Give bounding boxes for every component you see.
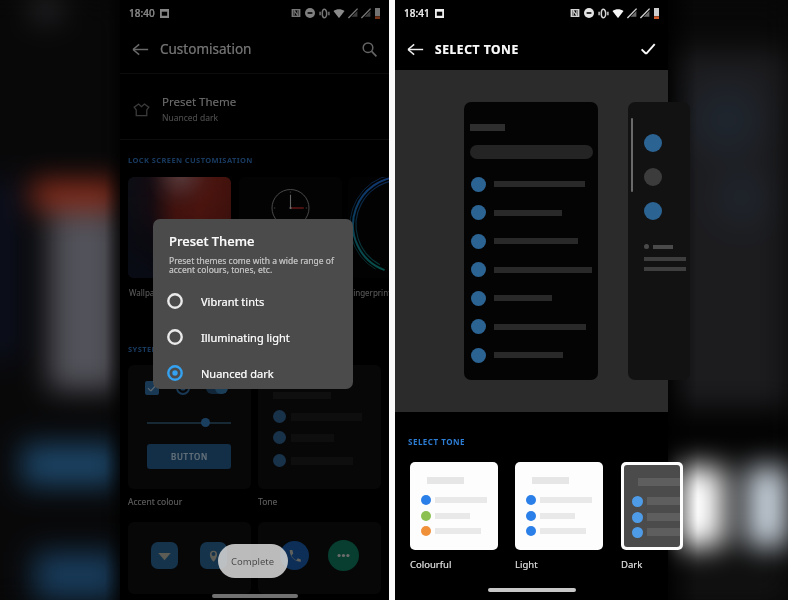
staticText: Light	[515, 558, 538, 571]
staticText: 18:40	[129, 6, 155, 20]
button[interactable]: Back	[395, 28, 435, 70]
button[interactable]: Vibrant tints	[153, 285, 353, 317]
button[interactable]	[128, 522, 251, 594]
staticText: Tone	[258, 496, 278, 508]
button[interactable]: Preset Theme	[120, 85, 389, 133]
staticText: LOCK SCREEN CUSTOMISATION	[128, 155, 253, 165]
button[interactable]: Dark	[621, 462, 683, 571]
button[interactable]: Complete	[218, 544, 288, 578]
button[interactable]: BUTTON	[147, 444, 231, 469]
staticText: Preset Theme	[162, 94, 237, 110]
button[interactable]: BUTTON	[128, 365, 251, 508]
staticText: Accent colour	[128, 496, 183, 508]
button[interactable]: Wallpaper	[128, 177, 231, 298]
button[interactable]	[464, 102, 598, 380]
staticText: BUTTON	[171, 451, 208, 462]
staticText: Colourful	[410, 558, 452, 571]
button[interactable]: Nuanced dark	[153, 357, 353, 389]
staticText: Preset themes come with a wide range of	[169, 255, 334, 267]
staticText: Wallpaper	[129, 287, 168, 298]
staticText: Preset Theme	[169, 232, 255, 250]
staticText: Illuminating light	[201, 330, 290, 345]
button[interactable]: Tone	[258, 365, 381, 508]
staticText: Customisation	[160, 40, 252, 58]
button[interactable]: Light	[515, 462, 603, 571]
staticText: Nuanced dark	[201, 366, 274, 381]
staticText: SYSTEM	[128, 344, 159, 354]
staticText: Vibrant tints	[201, 294, 265, 309]
staticText: Dark	[621, 558, 643, 571]
button[interactable]: Confirm	[628, 28, 668, 70]
button[interactable]: Search	[349, 28, 389, 70]
button[interactable]: Back	[120, 28, 160, 70]
button[interactable]	[258, 522, 381, 594]
staticText: Fingerprint	[349, 287, 392, 298]
staticText: 18:41	[404, 6, 430, 20]
staticText: SELECT TONE	[408, 436, 465, 447]
button[interactable]: Colourful	[410, 462, 498, 571]
button[interactable]: Clock	[239, 177, 342, 298]
staticText: accent colours, tones, etc.	[169, 264, 273, 276]
button[interactable]: Illuminating light	[153, 321, 353, 353]
staticText: Complete	[231, 555, 275, 568]
button[interactable]	[628, 102, 690, 380]
staticText: SELECT TONE	[435, 41, 519, 57]
staticText: Nuanced dark	[162, 112, 219, 124]
button[interactable]: Fingerprint	[348, 177, 451, 298]
